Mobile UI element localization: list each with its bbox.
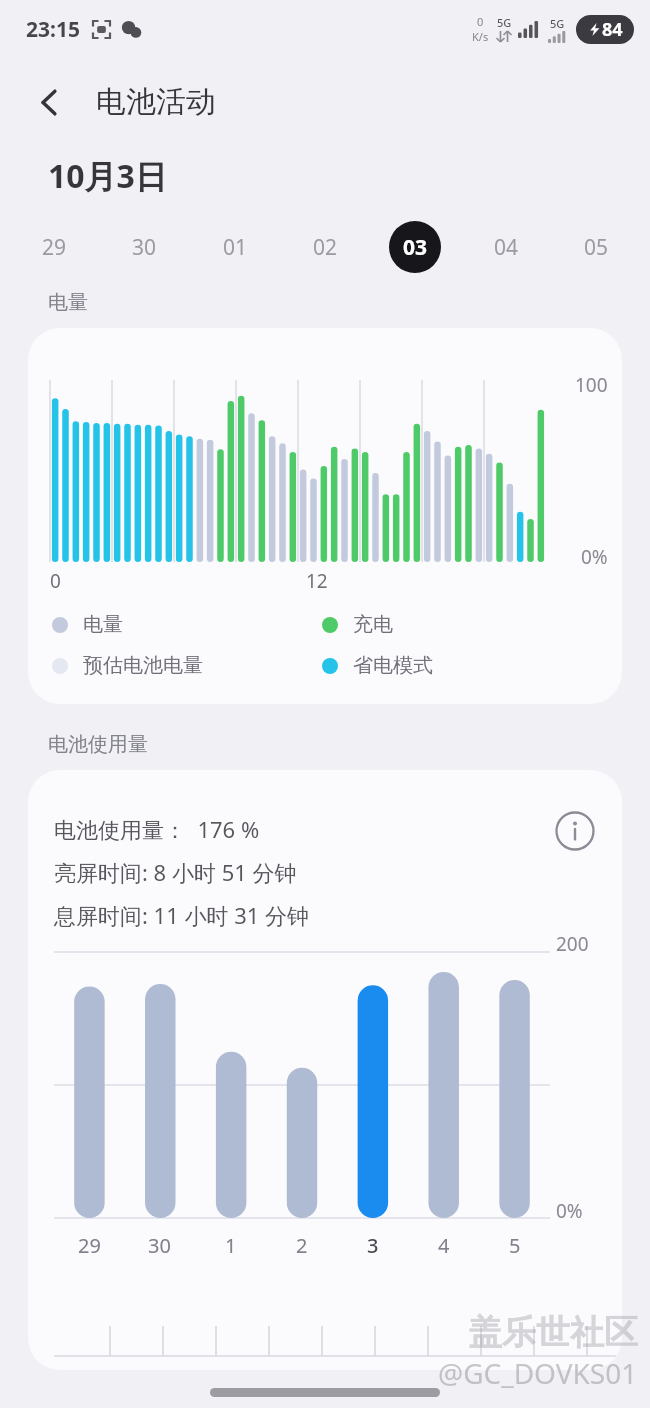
staticText: 84 [602,17,623,42]
button[interactable]: 03 [389,221,441,273]
staticText: 05 [584,233,609,262]
staticText: 电量 [48,290,88,315]
staticText: 0% [581,544,608,570]
staticText: 电池使用量 [48,732,148,757]
staticText: 29 [42,233,67,262]
staticText: 0 [50,568,61,594]
staticText: 10月3日 [48,154,167,198]
staticText: 12 [306,568,328,594]
staticText: 04 [494,233,519,262]
staticText: 4 [438,1232,450,1259]
staticText: 1 [225,1232,237,1259]
staticText: 100 [575,372,608,398]
staticText: @GC_DOVKS01 [438,1354,638,1392]
staticText: 电池使用量： 176 % [54,814,260,844]
staticText: 息屏时间: 11 小时 31 分钟 [54,900,310,930]
button[interactable]: 04 [480,221,532,273]
button[interactable]: 100 [28,328,622,704]
staticText: 充电 [353,612,393,637]
staticText: 29 [78,1232,101,1259]
staticText: 盖乐世社区 [468,1311,638,1354]
staticText: 01 [223,233,248,262]
staticText: 预估电池电量 [83,653,203,678]
staticText: 5G [550,16,565,31]
staticText: 5G [497,15,512,30]
staticText: 3 [367,1232,379,1259]
staticText: 电量 [83,612,123,637]
staticText: K/s [472,29,489,44]
staticText: 0 [477,14,484,29]
staticText: 02 [313,233,338,262]
staticText: 03 [403,233,428,262]
staticText: 省电模式 [353,653,433,678]
staticText: 5 [509,1232,521,1259]
button[interactable]: 02 [299,221,351,273]
button[interactable]: 01 [209,221,261,273]
staticText: 电池活动 [96,83,216,121]
button[interactable]: 信息 [550,806,600,856]
staticText: 2 [296,1232,308,1259]
staticText: 200 [556,931,589,957]
button[interactable]: 29 [28,221,80,273]
button[interactable]: 30 [118,221,170,273]
button[interactable]: 返回 [20,73,78,131]
staticText: 亮屏时间: 8 小时 51 分钟 [54,857,297,887]
button[interactable]: 05 [570,221,622,273]
staticText: 30 [148,1232,171,1259]
staticText: 30 [132,233,157,262]
staticText: 0% [556,1198,583,1224]
staticText: 23:15 [26,15,80,44]
